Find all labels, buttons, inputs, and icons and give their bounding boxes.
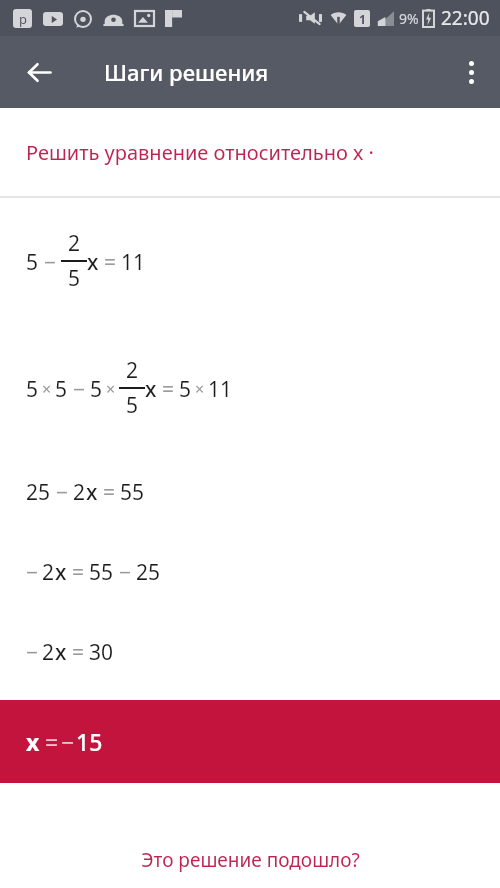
staticText: 5 [90, 375, 103, 404]
staticText: x [145, 375, 157, 404]
staticText: 30 [89, 638, 114, 667]
staticText: x [86, 478, 98, 507]
staticText: = [103, 478, 116, 507]
staticText: × [42, 378, 52, 400]
staticText: Это решение подошло? [141, 847, 360, 873]
staticText: 22:00 [441, 5, 490, 31]
staticText: × [195, 378, 205, 400]
staticText: 55 [120, 478, 145, 507]
staticText: 2 [126, 356, 139, 385]
staticText: 2 [42, 558, 55, 587]
staticText: 55 [89, 558, 114, 587]
staticText: 5 [126, 391, 139, 420]
staticText: − [26, 558, 39, 587]
staticText: − [73, 375, 86, 404]
staticText: − [26, 638, 39, 667]
staticText: = [72, 558, 85, 587]
staticText: p [19, 10, 27, 28]
staticText: = [162, 375, 175, 404]
staticText: 2 [68, 229, 81, 258]
staticText: x [55, 558, 67, 587]
staticText: 11 [208, 375, 233, 404]
button[interactable]: Ещё [448, 49, 494, 95]
staticText: − [56, 478, 69, 507]
staticText: − [44, 248, 57, 277]
staticText: − [61, 726, 75, 757]
staticText: Решить уравнение относительно х · [26, 139, 374, 166]
staticText: = [45, 726, 59, 757]
staticText: = [72, 638, 85, 667]
staticText: x [87, 248, 99, 277]
staticText: 9% [399, 9, 419, 28]
staticText: − [119, 558, 132, 587]
staticText: 1 [359, 11, 366, 27]
staticText: = [104, 248, 117, 277]
button[interactable]: x [0, 700, 500, 783]
staticText: × [106, 378, 116, 400]
staticText: 25 [136, 558, 161, 587]
staticText: 25 [26, 478, 51, 507]
staticText: 2 [42, 638, 55, 667]
staticText: 5 [26, 248, 39, 277]
staticText: 5 [55, 375, 68, 404]
button[interactable]: Это решение подошло? [133, 843, 368, 877]
staticText: 5 [68, 264, 81, 293]
staticText: 5 [26, 375, 39, 404]
staticText: 11 [121, 248, 146, 277]
staticText: x [55, 638, 67, 667]
staticText: Шаги решения [104, 57, 269, 87]
button[interactable]: Назад [16, 49, 62, 95]
staticText: 5 [179, 375, 192, 404]
staticText: 15 [76, 726, 103, 757]
staticText: 2 [73, 478, 86, 507]
staticText: x [26, 726, 40, 757]
